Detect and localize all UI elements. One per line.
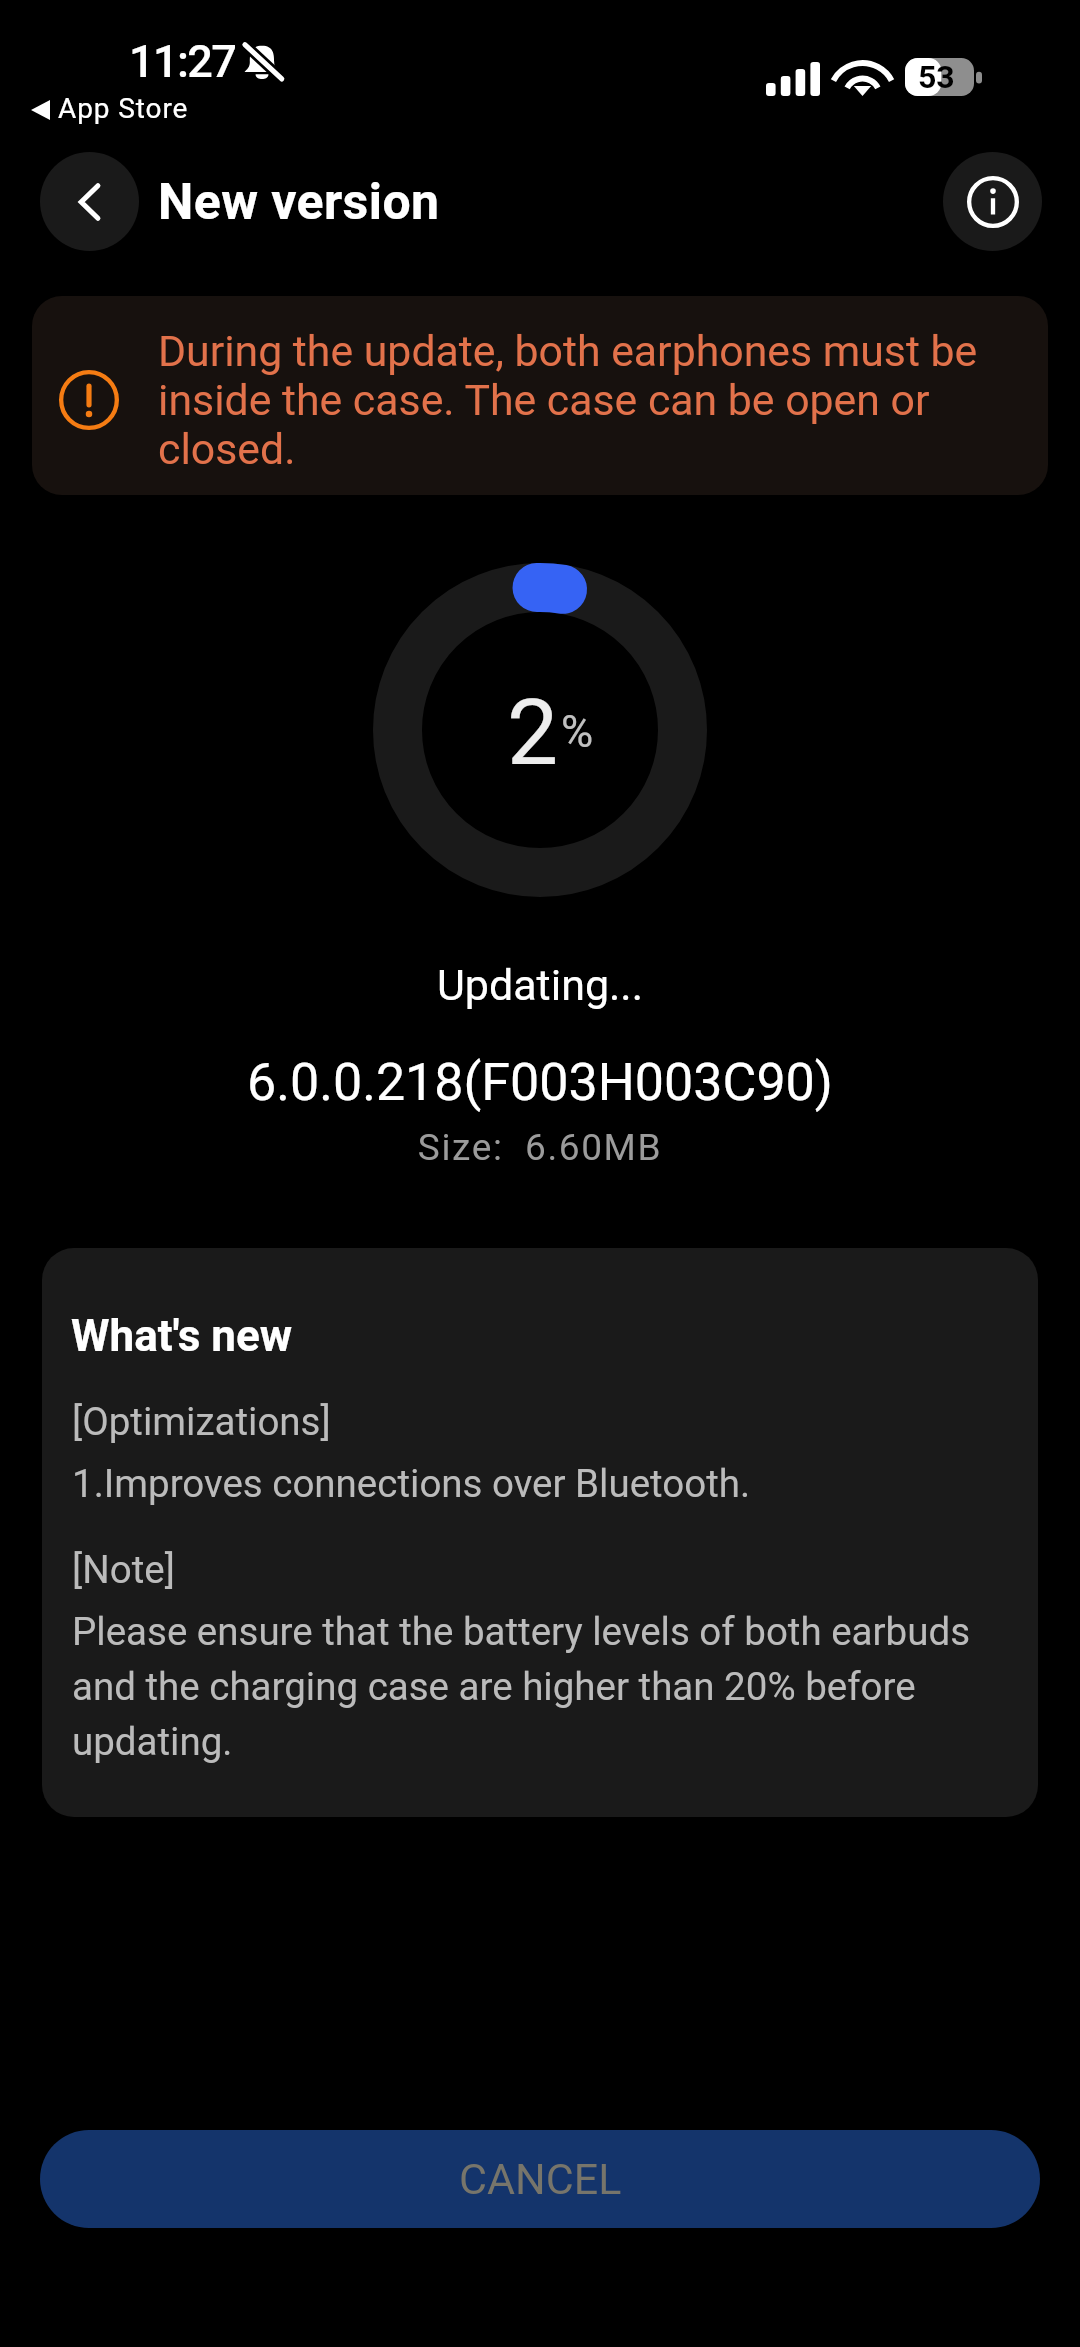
staticText: New version xyxy=(158,173,440,232)
staticText: Size: 6.60MB xyxy=(0,1126,1080,1169)
staticText: 11:27 xyxy=(129,35,236,88)
staticText: 53 xyxy=(918,58,955,96)
staticText: Please ensure that the battery levels of… xyxy=(72,1609,997,1764)
button[interactable]: CANCEL xyxy=(40,2130,1040,2228)
staticText: Updating... xyxy=(0,960,1080,1010)
button[interactable]: Back xyxy=(40,152,139,251)
staticText: CANCEL xyxy=(459,2154,622,2204)
staticText: 1.Improves connections over Bluetooth. xyxy=(72,1461,751,1506)
staticText: % xyxy=(561,706,594,758)
staticText: 6.0.0.218(F003H003C90) xyxy=(0,1052,1080,1113)
staticText: During the update, both earphones must b… xyxy=(158,326,1038,474)
staticText: App Store xyxy=(58,92,189,125)
staticText: [Optimizations] xyxy=(72,1399,331,1444)
staticText: What's new xyxy=(71,1310,293,1362)
button[interactable]: Information xyxy=(943,152,1042,251)
staticText: 2 xyxy=(507,680,559,787)
staticText: [Note] xyxy=(72,1547,175,1592)
